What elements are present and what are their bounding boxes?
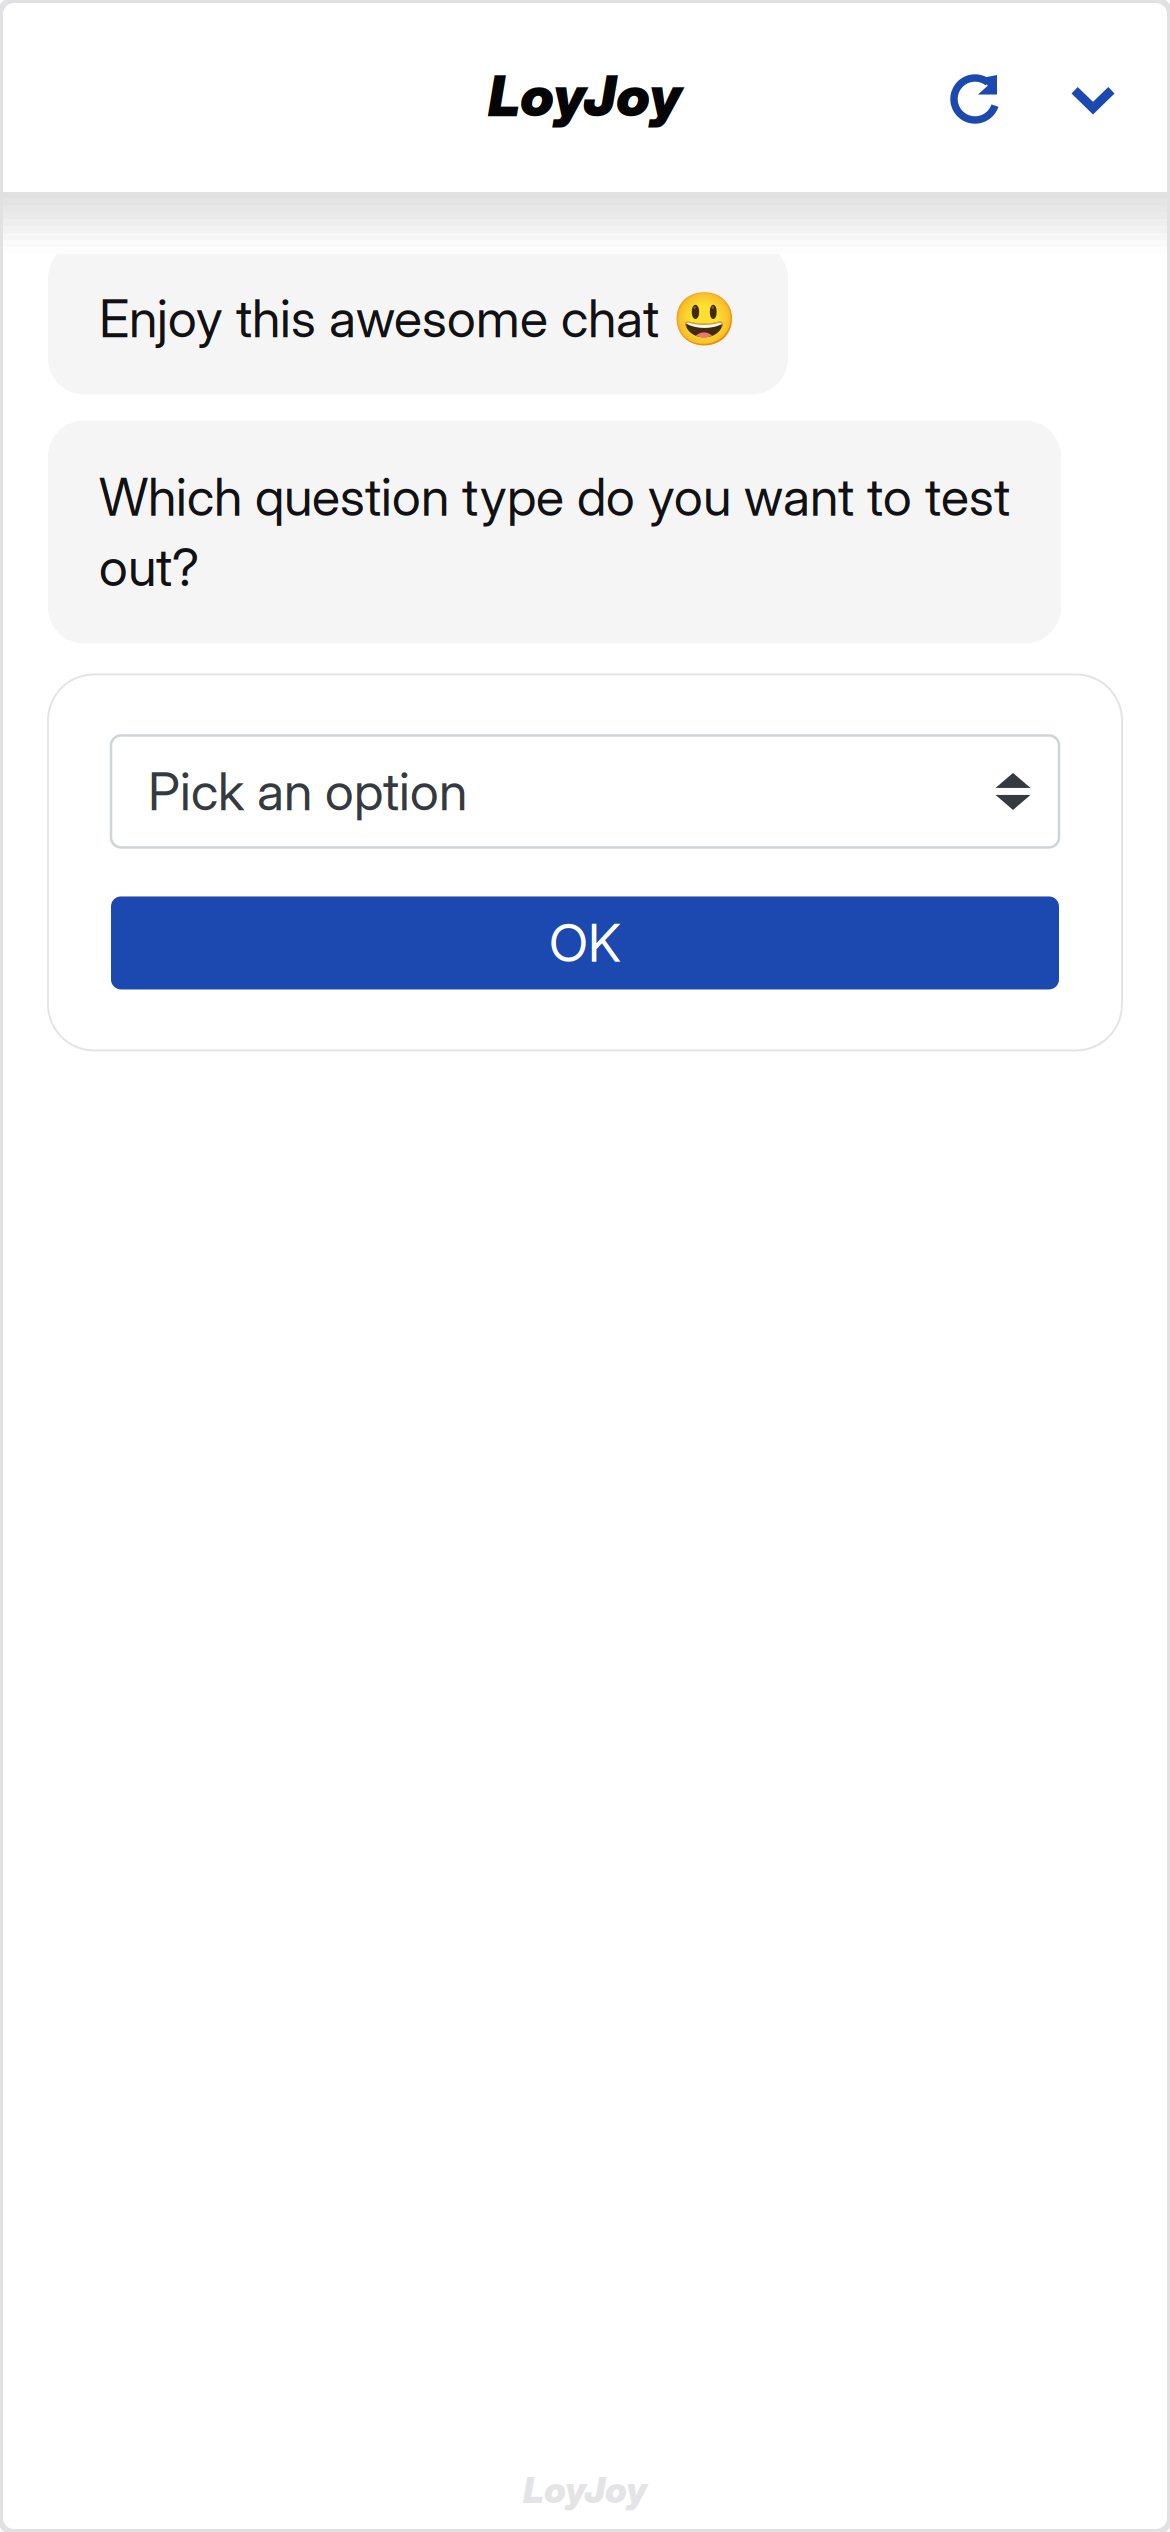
staticText: Pick an option xyxy=(148,756,467,827)
button[interactable]: Minimise chat xyxy=(1037,34,1149,158)
button[interactable]: OK xyxy=(111,896,1059,989)
button[interactable]: Pick an option xyxy=(111,735,1059,847)
staticText: Enjoy this awesome chat 😃 xyxy=(99,283,737,353)
staticText: LoyJoy xyxy=(488,62,682,130)
staticText: LoyJoy xyxy=(523,2468,647,2512)
button[interactable]: Restart conversation xyxy=(925,34,1037,158)
staticText: OK xyxy=(549,908,621,978)
staticText: Which question type do you want to test … xyxy=(99,461,1010,602)
